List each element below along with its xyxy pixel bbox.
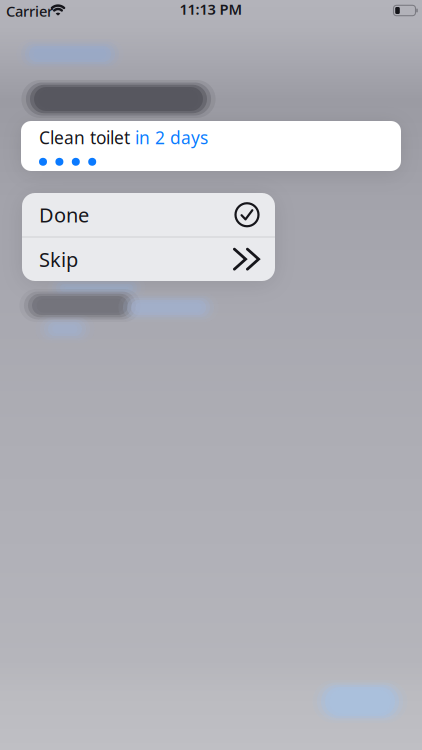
staticText: 11:13 PM: [179, 0, 242, 19]
staticText: Skip: [39, 246, 78, 273]
staticText: Carrier: [6, 1, 53, 21]
staticText: in 2 days: [135, 126, 208, 149]
button[interactable]: Done: [22, 193, 275, 236]
staticText: Done: [39, 201, 89, 228]
staticText: Clean toilet: [39, 126, 130, 149]
button[interactable]: Skip: [22, 237, 275, 281]
button[interactable]: Clean toilet: [21, 121, 401, 171]
